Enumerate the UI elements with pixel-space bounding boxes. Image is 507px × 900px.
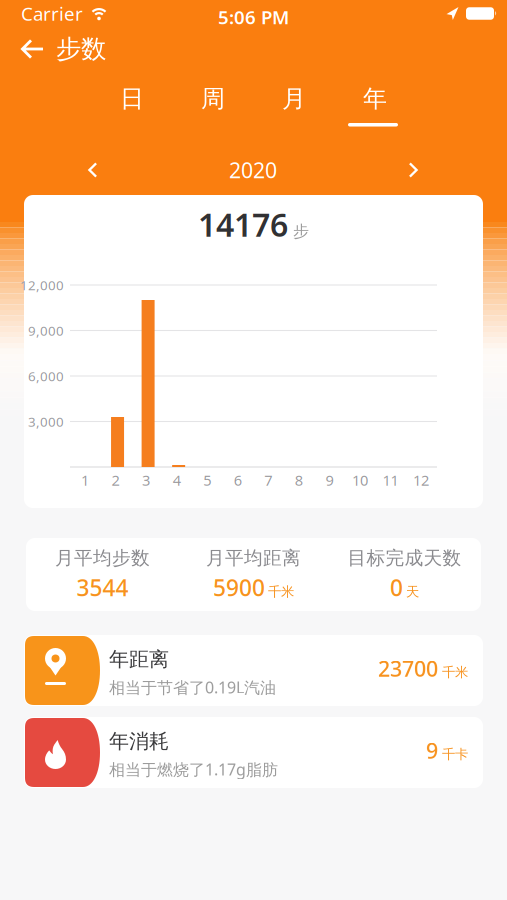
button[interactable]: 年距离 (24, 635, 483, 706)
staticText: 8 (295, 470, 303, 490)
staticText: 9 (426, 736, 438, 765)
staticText: 年距离 (109, 647, 169, 672)
staticText: 12,000 (20, 276, 64, 294)
staticText: 6 (234, 470, 242, 490)
staticText: 6,000 (28, 367, 64, 385)
staticText: 月平均距离 (206, 546, 301, 569)
staticText: 11 (382, 470, 398, 490)
staticText: 千米 (442, 664, 468, 680)
button[interactable]: 月 (253, 84, 334, 113)
staticText: 年消耗 (109, 729, 169, 754)
staticText: 9 (325, 470, 333, 490)
staticText: 12 (413, 470, 429, 490)
staticText: 步 (293, 221, 309, 241)
staticText: 14176 (198, 203, 288, 245)
staticText: 步数 (56, 33, 106, 64)
staticText: 天 (406, 584, 419, 600)
staticText: 相当于节省了0.19L汽油 (109, 677, 276, 698)
staticText: 年 (363, 84, 387, 113)
staticText: 相当于燃烧了1.17g脂肪 (109, 759, 278, 780)
staticText: 0 (390, 572, 403, 602)
staticText: 5 (203, 470, 211, 490)
staticText: 3 (142, 470, 150, 490)
staticText: 千卡 (442, 746, 468, 762)
button[interactable]: 周 (172, 84, 253, 113)
staticText: 4 (173, 470, 181, 490)
staticText: 10 (352, 470, 368, 490)
staticText: 月平均步数 (55, 546, 150, 569)
staticText: 2 (111, 470, 119, 490)
staticText: 5:06 PM (218, 4, 289, 29)
button[interactable]: 年 (334, 84, 415, 113)
staticText: 3544 (76, 572, 128, 602)
button[interactable] (0, 39, 44, 59)
staticText: 2020 (229, 156, 277, 184)
staticText: 月 (282, 84, 306, 113)
staticText: 1 (81, 470, 89, 490)
staticText: 千米 (268, 584, 294, 600)
button[interactable] (408, 162, 507, 178)
staticText: 7 (264, 470, 272, 490)
staticText: 5900 (213, 572, 265, 602)
staticText: 周 (201, 84, 225, 113)
staticText: 目标完成天数 (347, 546, 461, 569)
button[interactable]: 日 (91, 84, 172, 113)
staticText: 3,000 (28, 413, 64, 430)
staticText: 23700 (378, 654, 438, 683)
staticText: 日 (120, 84, 144, 113)
button[interactable] (0, 162, 97, 178)
staticText: Carrier (21, 1, 83, 26)
button[interactable]: 年消耗 (24, 717, 483, 788)
staticText: 9,000 (28, 322, 64, 339)
